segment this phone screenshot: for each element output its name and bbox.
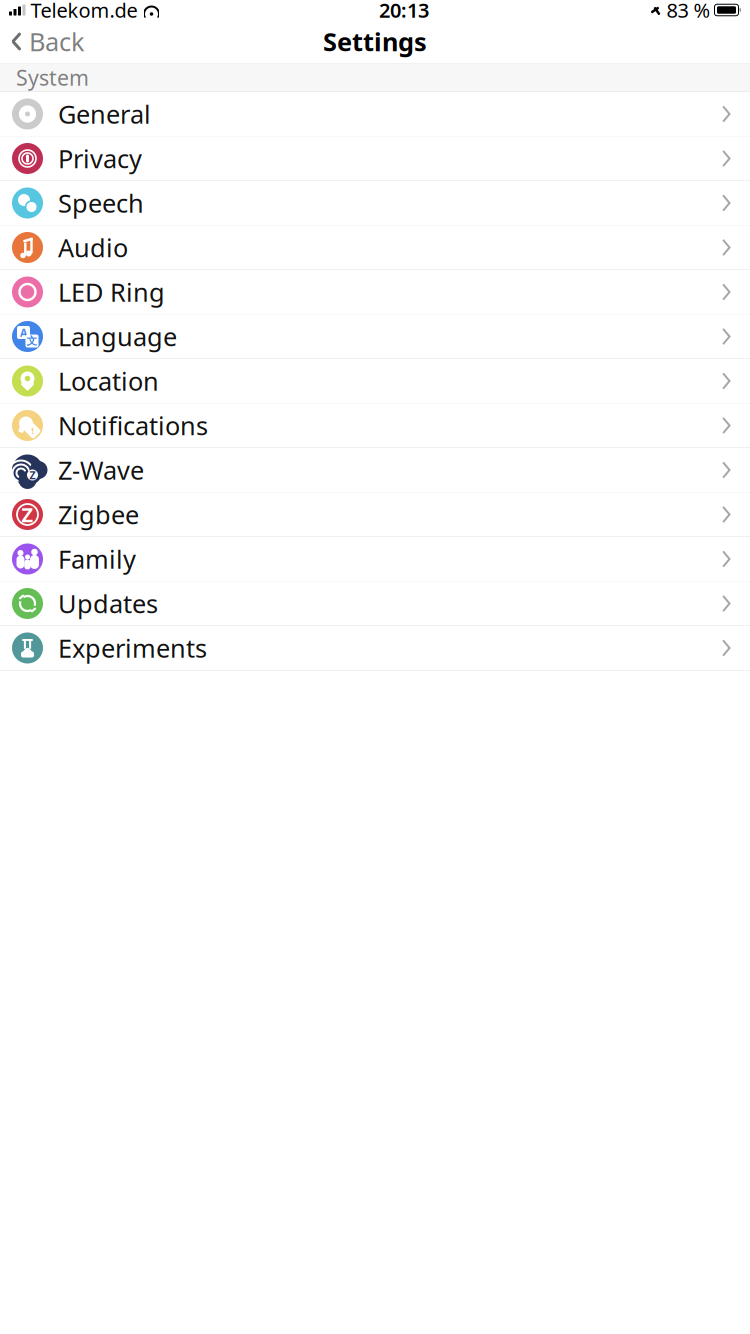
button[interactable]: Updates <box>0 581 750 625</box>
staticText: Notifications <box>58 409 208 442</box>
staticText: Privacy <box>58 142 142 175</box>
staticText: Family <box>58 542 136 576</box>
button[interactable]: Back <box>0 20 95 63</box>
button[interactable]: General <box>0 92 750 136</box>
staticText: Z-Wave <box>58 453 144 487</box>
button[interactable]: Family <box>0 537 750 581</box>
button[interactable]: Z <box>0 492 750 536</box>
button[interactable]: Experiments <box>0 626 750 670</box>
staticText: Language <box>58 320 177 353</box>
button[interactable]: Location <box>0 359 750 403</box>
staticText: Experiments <box>58 631 207 665</box>
staticText: Zigbee <box>58 498 139 531</box>
button[interactable]: Audio <box>0 225 750 269</box>
button[interactable]: Speech <box>0 181 750 225</box>
staticText: 文 <box>26 334 37 347</box>
staticText: Z <box>21 501 33 528</box>
button[interactable]: Notifications <box>0 403 750 447</box>
button[interactable]: Privacy <box>0 136 750 180</box>
staticText: Speech <box>58 186 144 220</box>
staticText: Location <box>58 364 159 398</box>
staticText: Back <box>29 25 85 58</box>
staticText: General <box>58 97 151 131</box>
staticText: LED Ring <box>58 275 165 309</box>
staticText: Settings <box>323 25 427 58</box>
staticText: Telekom.de <box>30 0 137 23</box>
staticText: 20:13 <box>379 0 429 23</box>
staticText: System <box>16 63 89 92</box>
button[interactable]: LED Ring <box>0 270 750 314</box>
button[interactable]: A <box>0 314 750 358</box>
staticText: 83 % <box>666 0 710 23</box>
staticText: Audio <box>58 231 128 264</box>
staticText: Updates <box>58 587 158 620</box>
staticText: A <box>20 325 27 340</box>
staticText: Z <box>29 468 35 482</box>
button[interactable]: Z <box>0 448 750 492</box>
